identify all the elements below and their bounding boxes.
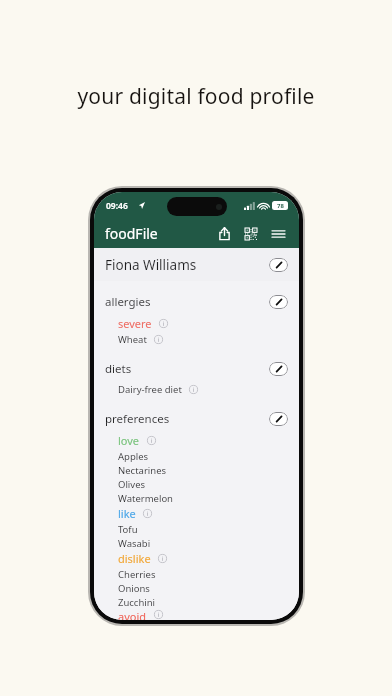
button[interactable]: Menu <box>269 226 288 242</box>
staticText: avoid <box>118 609 147 620</box>
staticText: allergies <box>105 294 151 310</box>
button[interactable]: Onions <box>94 581 299 595</box>
button[interactable]: dislike <box>94 550 299 567</box>
staticText: Nectarines <box>118 464 167 477</box>
button[interactable]: Tofu <box>94 522 299 536</box>
staticText: 09:46 <box>106 200 128 212</box>
staticText: Tofu <box>118 523 138 536</box>
button[interactable]: Olives <box>94 477 299 491</box>
staticText: Wheat <box>118 333 147 346</box>
button[interactable]: Wasabi <box>94 536 299 550</box>
button[interactable]: Wheat <box>94 332 299 346</box>
staticText: love <box>118 433 140 448</box>
button[interactable]: Share <box>216 224 233 243</box>
button[interactable]: love <box>94 432 299 449</box>
button[interactable]: Edit <box>269 412 288 426</box>
staticText: like <box>118 506 136 521</box>
staticText: Watermelon <box>118 492 173 505</box>
staticText: Wasabi <box>118 537 151 550</box>
staticText: severe <box>118 316 152 331</box>
staticText: Olives <box>118 478 146 491</box>
button[interactable]: Edit <box>269 362 288 376</box>
button[interactable]: Apples <box>94 449 299 463</box>
button[interactable]: Fiona Williams <box>94 248 299 281</box>
button[interactable]: preferences <box>94 409 299 428</box>
staticText: Dairy-free diet <box>118 383 182 396</box>
button[interactable]: Edit <box>269 295 288 309</box>
button[interactable]: Edit <box>269 258 288 272</box>
button[interactable]: avoid <box>94 609 299 620</box>
staticText: dislike <box>118 551 151 566</box>
staticText: Zucchini <box>118 596 156 609</box>
button[interactable]: like <box>94 505 299 522</box>
staticText: Fiona Williams <box>105 256 197 274</box>
staticText: 78 <box>277 202 284 210</box>
button[interactable]: severe <box>94 315 299 332</box>
button[interactable]: Watermelon <box>94 491 299 505</box>
button[interactable]: Cherries <box>94 567 299 581</box>
staticText: diets <box>105 361 132 377</box>
button[interactable]: allergies <box>94 292 299 311</box>
staticText: Cherries <box>118 568 156 581</box>
button[interactable]: Dairy-free diet <box>94 382 299 396</box>
staticText: foodFile <box>105 224 158 243</box>
staticText: your digital food profile <box>0 82 392 111</box>
staticText: Apples <box>118 450 149 463</box>
staticText: Onions <box>118 582 150 595</box>
button[interactable]: Zucchini <box>94 595 299 609</box>
button[interactable]: QR code <box>242 225 260 243</box>
button[interactable]: Nectarines <box>94 463 299 477</box>
button[interactable]: diets <box>94 359 299 378</box>
staticText: preferences <box>105 411 170 427</box>
